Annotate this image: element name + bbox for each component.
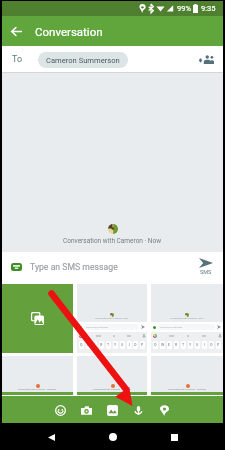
staticText: Conversation with Cameron · Yesterday — [168, 388, 207, 391]
staticText: R — [175, 343, 178, 347]
staticText: O — [210, 343, 213, 347]
button[interactable]: Add people — [199, 55, 214, 65]
staticText: Conversation with Cameron · Now — [95, 317, 129, 320]
staticText: E — [93, 343, 96, 347]
staticText: W — [161, 343, 165, 347]
staticText: O — [134, 343, 137, 347]
button[interactable]: Home — [105, 429, 121, 445]
staticText: 9:35 — [201, 4, 216, 13]
staticText: Y — [114, 343, 117, 347]
button[interactable]: Emoji — [47, 397, 73, 423]
button[interactable]: Back — [11, 26, 22, 37]
staticText: Type an SMS message — [86, 326, 109, 329]
button[interactable]: Photo — [2, 356, 73, 395]
staticText: Conversation with Cameron · Yesterday — [93, 388, 132, 391]
button[interactable]: Back — [43, 429, 59, 445]
staticText: Y — [189, 343, 192, 347]
staticText: W — [87, 343, 91, 347]
staticText: E — [168, 343, 171, 347]
button[interactable]: Photo — [151, 356, 223, 395]
staticText: 99% — [177, 4, 191, 13]
button[interactable]: Open gallery — [2, 284, 73, 353]
button[interactable]: Photo — [77, 356, 147, 395]
staticText: P — [141, 343, 144, 347]
staticText: Cameron Summerson — [46, 56, 120, 65]
staticText: R — [100, 343, 103, 347]
button[interactable]: Photo — [77, 284, 147, 353]
staticText: I — [204, 343, 205, 347]
staticText: Conversation with Cameron · Now — [170, 317, 204, 320]
button[interactable]: Camera — [73, 397, 99, 423]
button[interactable]: Recents — [166, 429, 182, 445]
staticText: To — [12, 54, 23, 65]
button[interactable]: Cameron Summerson — [38, 52, 128, 68]
button[interactable]: Gallery — [99, 397, 125, 423]
button[interactable]: Location — [151, 397, 177, 423]
staticText: T — [182, 343, 185, 347]
button[interactable]: Send SMS — [194, 256, 218, 277]
button[interactable]: Photo — [151, 284, 223, 353]
staticText: I — [129, 343, 130, 347]
button[interactable]: SMS type — [11, 263, 22, 271]
staticText: U — [196, 343, 199, 347]
staticText: Conversation with Cameron · Now — [63, 237, 162, 245]
staticText: U — [121, 343, 124, 347]
staticText: T — [107, 343, 110, 347]
staticText: Type an SMS message — [30, 262, 118, 272]
staticText: Conversation — [35, 25, 103, 38]
staticText: Q — [80, 343, 83, 347]
staticText: Type an SMS message — [160, 326, 183, 329]
button[interactable]: Voice — [125, 397, 151, 423]
staticText: Q — [154, 343, 157, 347]
staticText: Conversation with Cameron · Yesterday — [18, 388, 57, 391]
staticText: SMS — [200, 269, 212, 275]
staticText: P — [217, 343, 220, 347]
